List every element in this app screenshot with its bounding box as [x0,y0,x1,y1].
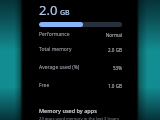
button[interactable]: Total memory [39,46,122,53]
button[interactable]: Memory used by apps [39,107,130,120]
button[interactable] [39,22,122,27]
staticText: Free [39,82,50,89]
staticText: 53% [112,65,122,71]
staticText: 2.0 GB [107,47,122,53]
staticText: Memory used by apps [39,107,97,114]
staticText: 2.0 [39,1,58,19]
staticText: Total memory [39,46,72,53]
staticText: GB [60,8,70,18]
button[interactable]: Free [39,82,122,89]
staticText: Average used (%) [39,64,80,71]
staticText: Normal [105,32,122,38]
staticText: 1.0 GB [107,83,122,89]
staticText: 29 apps used memory in the last 3 hours [39,116,120,120]
staticText: Performance [39,31,70,38]
button[interactable]: Performance [39,31,122,38]
button[interactable]: Average used (%) [39,64,122,71]
